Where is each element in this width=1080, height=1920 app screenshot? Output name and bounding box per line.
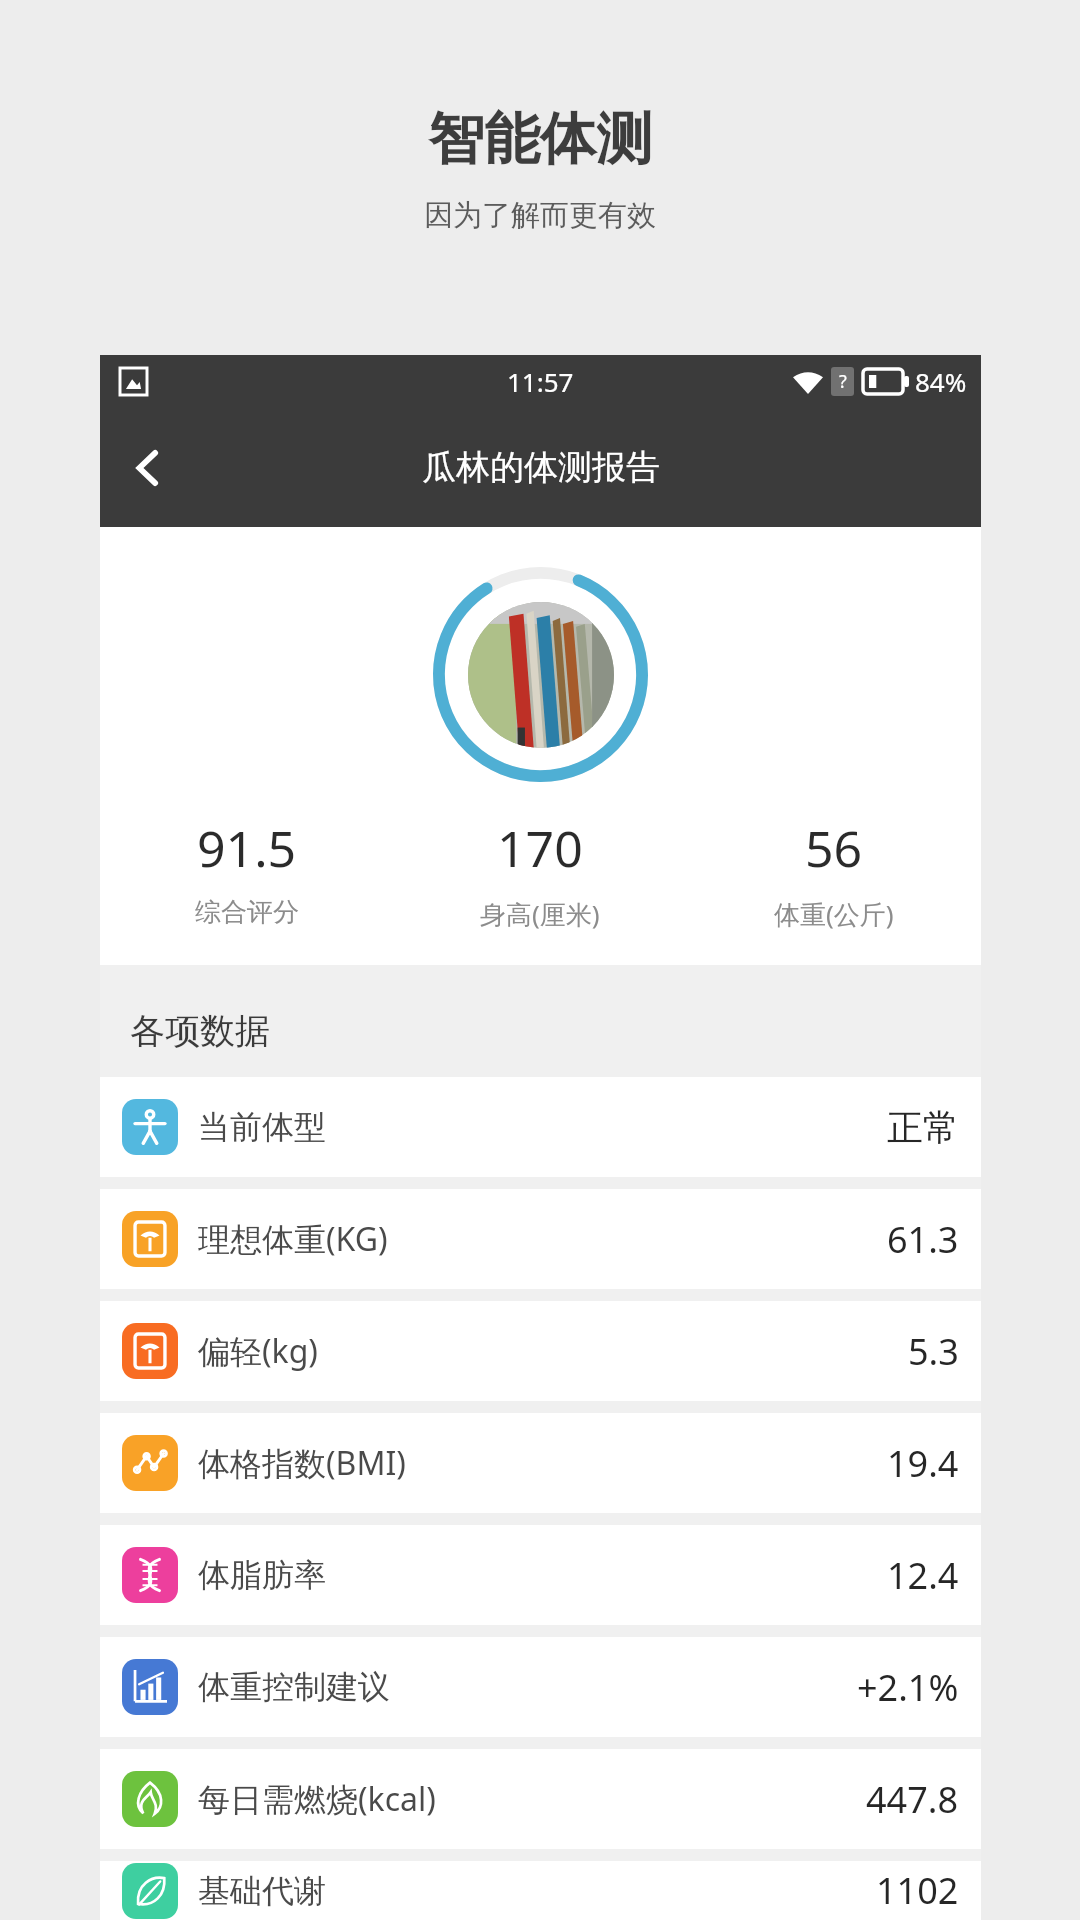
staticText: 智能体测 <box>428 104 652 175</box>
staticText: 体脂肪率 <box>198 1555 326 1595</box>
staticText: 正常 <box>887 1105 959 1150</box>
staticText: 每日需燃烧(kcal) <box>198 1777 436 1821</box>
staticText: 84% <box>915 364 967 399</box>
staticText: ? <box>839 369 847 394</box>
staticText: +2.1% <box>857 1663 959 1712</box>
button[interactable]: Back <box>108 428 188 508</box>
staticText: 当前体型 <box>198 1107 326 1147</box>
staticText: 61.3 <box>887 1215 959 1264</box>
staticText: 体格指数(BMI) <box>198 1441 406 1485</box>
button[interactable]: 体脂肪率 <box>100 1525 981 1625</box>
staticText: 170 <box>497 814 583 882</box>
staticText: 体重(公斤) <box>774 896 894 932</box>
staticText: 偏轻(kg) <box>198 1329 318 1373</box>
button[interactable]: 当前体型 <box>100 1077 981 1177</box>
staticText: 56 <box>805 814 863 882</box>
staticText: 11:57 <box>507 364 574 399</box>
staticText: 体重控制建议 <box>198 1667 390 1707</box>
staticText: 因为了解而更有效 <box>424 197 656 234</box>
staticText: 综合评分 <box>195 896 299 929</box>
button[interactable]: 每日需燃烧(kcal) <box>100 1749 981 1849</box>
staticText: 1102 <box>876 1866 959 1915</box>
button[interactable]: 理想体重(KG) <box>100 1189 981 1289</box>
button[interactable]: 偏轻(kg) <box>100 1301 981 1401</box>
button[interactable]: Profile photo <box>468 602 614 748</box>
staticText: 19.4 <box>887 1439 959 1488</box>
staticText: 12.4 <box>887 1551 959 1600</box>
button[interactable]: 体格指数(BMI) <box>100 1413 981 1513</box>
staticText: 5.3 <box>908 1327 959 1376</box>
staticText: 身高(厘米) <box>480 896 600 932</box>
staticText: 理想体重(KG) <box>198 1217 388 1261</box>
button[interactable]: 基础代谢 <box>100 1861 981 1920</box>
staticText: 各项数据 <box>130 1009 270 1053</box>
button[interactable]: 体重控制建议 <box>100 1637 981 1737</box>
staticText: 基础代谢 <box>198 1871 326 1911</box>
staticText: 447.8 <box>866 1775 959 1824</box>
staticText: 91.5 <box>197 814 297 882</box>
staticText: 瓜林的体测报告 <box>422 446 660 489</box>
